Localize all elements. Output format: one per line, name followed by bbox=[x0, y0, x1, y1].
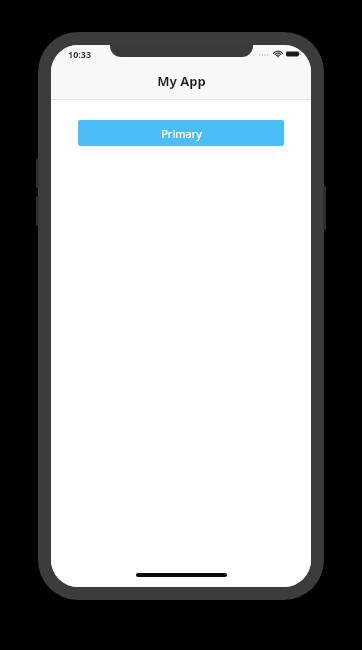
staticText: 10:33 bbox=[68, 48, 92, 60]
staticText: My App bbox=[157, 72, 206, 90]
button[interactable]: Primary bbox=[78, 120, 284, 146]
staticText: Primary bbox=[161, 126, 202, 141]
